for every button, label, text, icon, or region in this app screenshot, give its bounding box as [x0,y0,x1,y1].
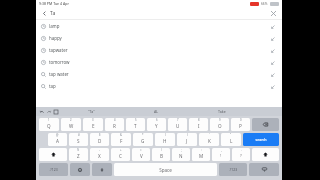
staticText: O [218,123,222,129]
button[interactable]: Take [189,107,254,116]
button[interactable]: tap [36,80,282,92]
button[interactable]: 1 [39,118,59,131]
staticText: tomorrow [49,59,70,65]
button[interactable]: . [232,148,250,161]
button[interactable]: happy [36,32,282,44]
staticText: N [179,153,183,159]
button[interactable]: 5 [126,118,145,131]
button[interactable]: Hide keyboard [249,163,279,176]
button[interactable]: Shift right [252,148,279,161]
staticText: Z [77,153,80,159]
button[interactable]: search [243,133,279,146]
button[interactable]: tapwater [36,44,282,56]
button[interactable]: * [133,133,153,146]
staticText: Space [159,167,172,173]
button[interactable]: 6 [147,118,166,131]
button[interactable]: .?123 [39,163,68,176]
button[interactable]: # [69,133,88,146]
staticText: B [160,153,163,159]
staticText: G [141,138,145,144]
button[interactable]: lamp [36,20,282,32]
button[interactable]: ( [155,133,175,146]
staticText: L [230,138,233,144]
staticText: 3 [92,118,94,122]
button[interactable]: Backspace [252,118,279,131]
button[interactable]: 4 [105,118,124,131]
button[interactable]: Insert tap water [268,70,277,79]
button[interactable]: Shift [39,148,67,161]
staticText: X [98,153,101,159]
staticText: + [120,148,122,152]
staticText: - [99,148,100,152]
button[interactable]: % [69,148,88,161]
button[interactable]: Insert tomorrow [268,58,277,67]
button[interactable]: 7 [168,118,187,131]
staticText: T [134,123,137,129]
button[interactable]: & [111,133,131,146]
staticText: Q [47,123,51,129]
staticText: 8 [198,118,200,122]
button[interactable]: " [221,133,241,146]
button[interactable]: Emoji [70,163,90,176]
button[interactable]: Insert lamp [268,22,277,31]
staticText: "Ta" [88,109,95,114]
staticText: F [120,138,123,144]
staticText: tapwater [49,47,68,53]
button[interactable]: tomorrow [36,56,282,68]
button[interactable]: Back [40,9,48,17]
staticText: S [77,138,80,144]
button[interactable]: - [90,148,109,161]
button[interactable]: "Ta" [59,107,124,116]
staticText: K [208,138,211,144]
button[interactable]: 0 [231,118,250,131]
button[interactable]: .?123 [219,163,247,176]
staticText: . [241,148,242,152]
button[interactable]: Insert tapwater [268,46,277,55]
button[interactable]: Paste [52,108,59,115]
staticText: .?123 [228,167,238,172]
staticText: # [78,133,80,137]
button[interactable]: tap water [36,68,282,80]
button[interactable]: Clear [269,9,278,18]
button[interactable]: + [111,148,130,161]
staticText: search [255,137,267,142]
button[interactable]: ; [172,148,190,161]
staticText: A [56,138,59,144]
button[interactable]: $ [90,133,109,146]
button[interactable]: Redo [45,108,52,115]
staticText: Y [155,123,158,129]
staticText: * [142,133,144,137]
staticText: 7 [177,118,179,122]
button[interactable]: Insert happy [268,34,277,43]
button[interactable]: 8 [189,118,208,131]
staticText: ' [209,133,210,137]
staticText: Take [218,109,226,114]
staticText: = [140,148,142,152]
button[interactable]: , [212,148,230,161]
button[interactable]: ) [177,133,197,146]
button[interactable]: 9 [210,118,229,131]
staticText: U [176,123,180,129]
button[interactable]: / [152,148,170,161]
button[interactable]: Microphone [92,163,112,176]
button[interactable]: Space [114,163,217,176]
button[interactable]: Insert tap [268,82,277,91]
button[interactable]: 2 [61,118,81,131]
staticText: I [198,123,200,129]
staticText: C [119,153,122,159]
button[interactable]: = [132,148,150,161]
staticText: 0 [240,118,242,122]
button[interactable]: @ [48,133,67,146]
button[interactable]: : [192,148,210,161]
staticText: lamp [49,23,60,29]
staticText: 4 [114,118,116,122]
staticText: / [161,148,162,152]
staticText: E [92,123,95,129]
button[interactable]: Undo [38,108,45,115]
staticText: : [201,148,202,152]
button[interactable]: 3 [83,118,103,131]
button[interactable]: ' [199,133,219,146]
button[interactable]: Back [36,7,282,19]
button[interactable]: AL [124,107,189,116]
staticText: ! [220,153,222,159]
